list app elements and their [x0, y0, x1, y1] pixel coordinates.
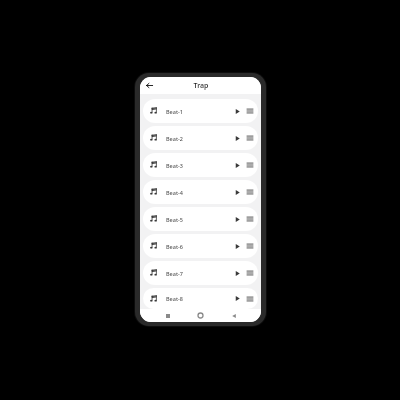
button[interactable]: Play	[233, 188, 242, 197]
staticText: Trap	[193, 81, 209, 91]
button[interactable]: Play	[233, 294, 242, 303]
button[interactable]: Beat-2	[143, 126, 258, 150]
button[interactable]: Beat-4	[143, 180, 258, 204]
button[interactable]: Play	[233, 107, 242, 116]
button[interactable]: Play	[233, 242, 242, 251]
button[interactable]: Play	[233, 215, 242, 224]
button[interactable]: Beat-8	[143, 288, 258, 309]
staticText: Beat-8	[166, 295, 233, 302]
button[interactable]: Options	[245, 268, 255, 278]
staticText: Beat-2	[166, 135, 233, 142]
button[interactable]: Options	[245, 187, 255, 197]
button[interactable]: Options	[245, 214, 255, 224]
button[interactable]: Back	[228, 310, 239, 321]
button[interactable]: Beat-7	[143, 261, 258, 285]
button[interactable]: Back	[144, 80, 155, 91]
button[interactable]: Options	[245, 133, 255, 143]
button[interactable]: Options	[245, 241, 255, 251]
button[interactable]: Play	[233, 134, 242, 143]
button[interactable]: Play	[233, 161, 242, 170]
button[interactable]: Beat-3	[143, 153, 258, 177]
button[interactable]: Play	[233, 269, 242, 278]
button[interactable]: Beat-6	[143, 234, 258, 258]
button[interactable]: Recent apps	[162, 310, 173, 321]
staticText: Beat-3	[166, 162, 233, 169]
button[interactable]: Beat-5	[143, 207, 258, 231]
button[interactable]: Beat-1	[143, 99, 258, 123]
staticText: Beat-7	[166, 270, 233, 277]
staticText: Beat-1	[166, 108, 233, 115]
staticText: Beat-4	[166, 189, 233, 196]
button[interactable]: Options	[245, 160, 255, 170]
staticText: Beat-5	[166, 216, 233, 223]
button[interactable]: Options	[245, 106, 255, 116]
staticText: Beat-6	[166, 243, 233, 250]
button[interactable]: Options	[245, 294, 255, 304]
button[interactable]: Home	[195, 310, 206, 321]
